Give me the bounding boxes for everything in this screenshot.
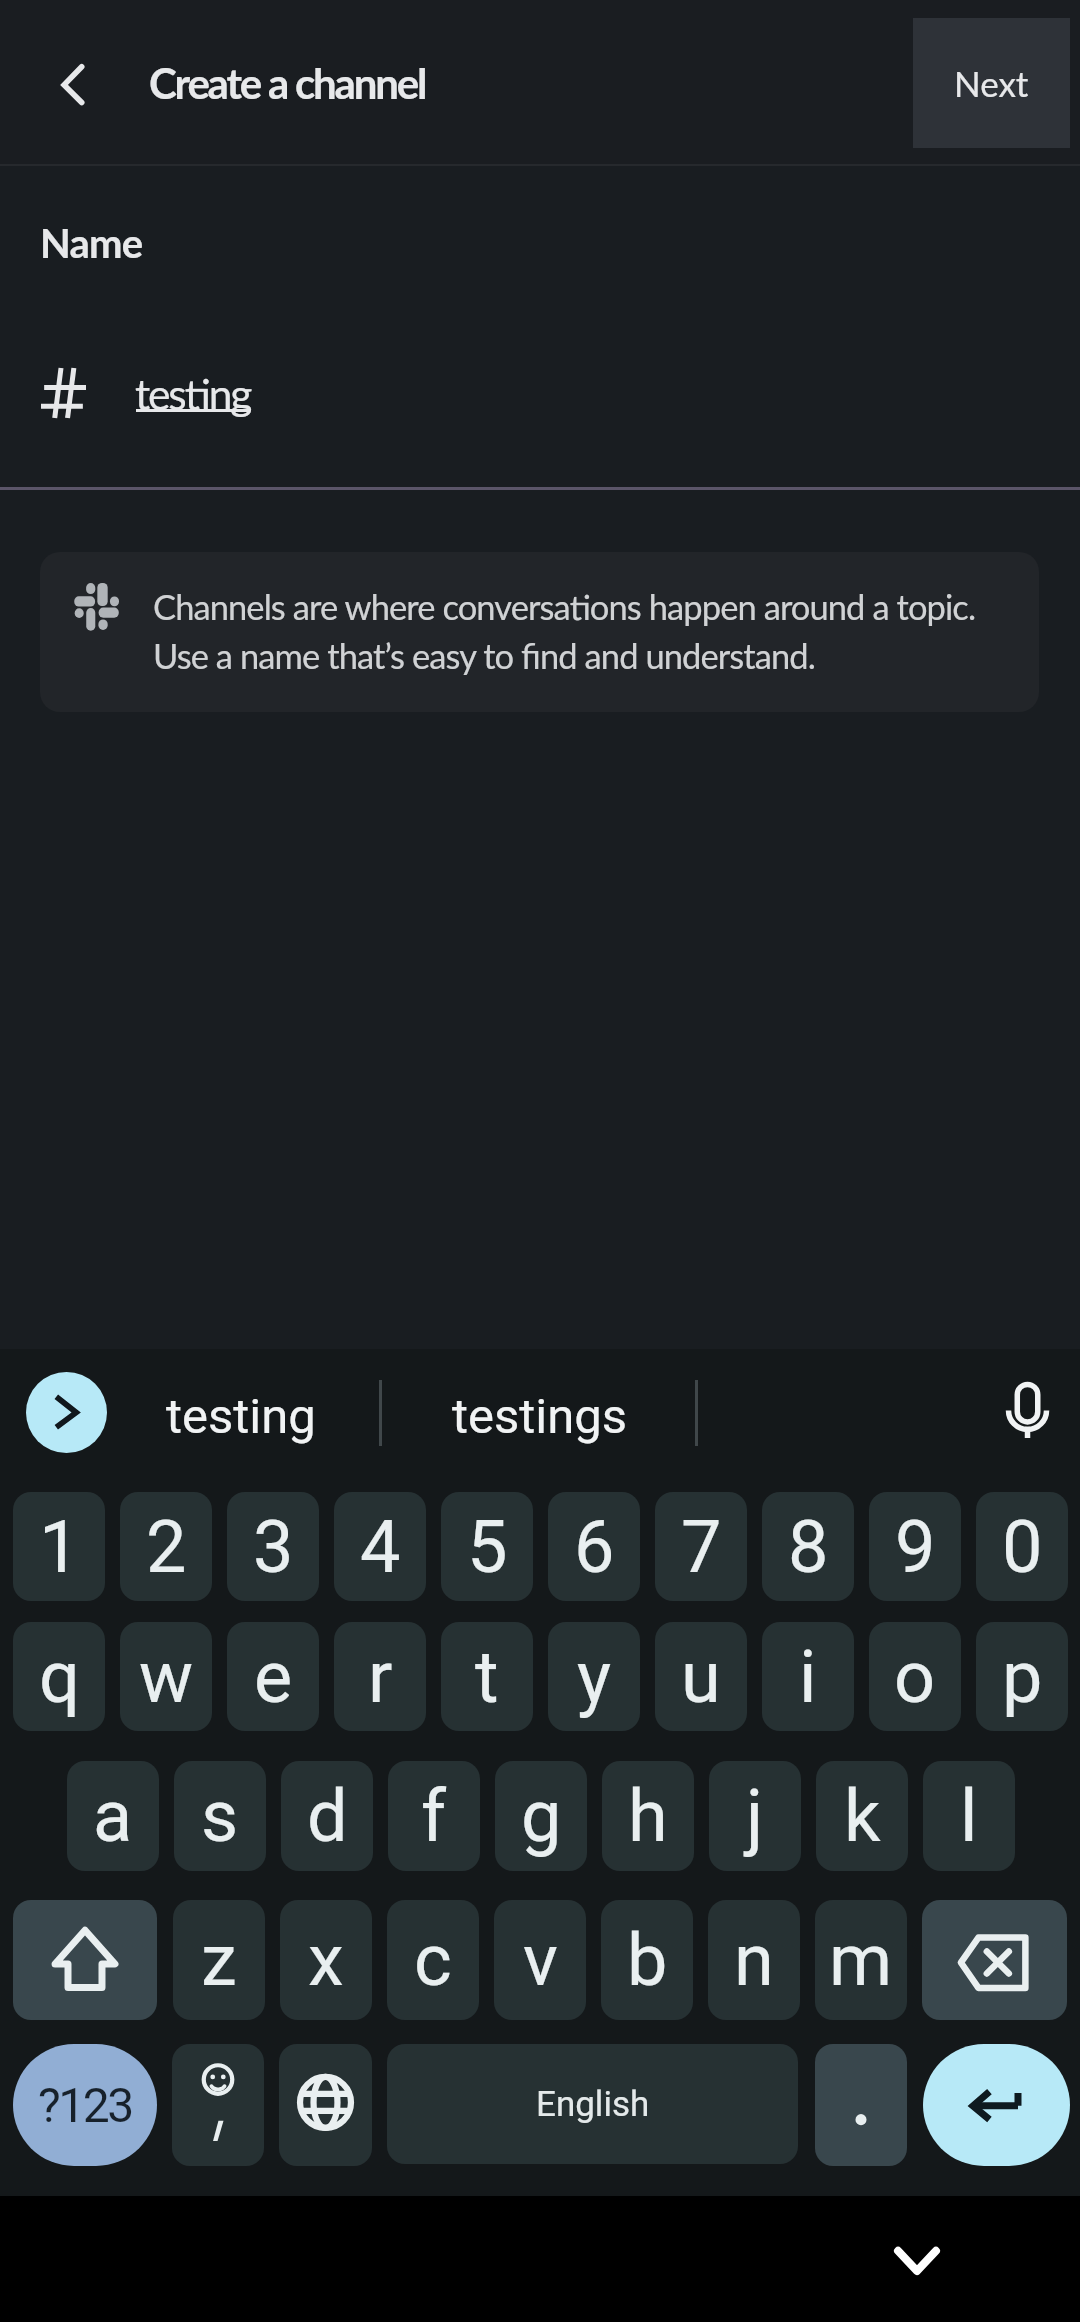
button[interactable]: j [709, 1761, 801, 1871]
button[interactable]: Enter [923, 2044, 1070, 2166]
staticText: Channels are where conversations happen … [153, 586, 976, 676]
button[interactable]: z [173, 1900, 265, 2020]
staticText: r [368, 1635, 393, 1719]
button[interactable]: s [174, 1761, 266, 1871]
staticText: x [308, 1918, 344, 2002]
staticText: i [799, 1635, 817, 1719]
button[interactable]: p [976, 1622, 1068, 1731]
button[interactable]: x [280, 1900, 372, 2020]
staticText: testing [135, 368, 251, 419]
staticText: d [307, 1774, 348, 1858]
staticText: Name [40, 219, 143, 267]
button[interactable]: Hide keyboard [869, 2215, 965, 2295]
button[interactable]: 0 [976, 1492, 1068, 1601]
staticText: 2 [146, 1505, 187, 1589]
button[interactable]: Period [815, 2044, 907, 2166]
staticText: s [201, 1774, 239, 1858]
button[interactable]: 1 [13, 1492, 105, 1601]
staticText: w [139, 1635, 194, 1719]
staticText: f [421, 1774, 447, 1858]
button[interactable]: 5 [441, 1492, 533, 1601]
button[interactable]: 9 [869, 1492, 961, 1601]
button[interactable]: c [387, 1900, 479, 2020]
staticText: 4 [360, 1505, 401, 1589]
button[interactable]: Back [32, 42, 116, 122]
staticText: t [475, 1635, 499, 1719]
staticText: 6 [574, 1505, 615, 1589]
staticText: z [201, 1918, 237, 2002]
button[interactable]: Next [913, 18, 1070, 148]
staticText: 1 [39, 1505, 80, 1589]
staticText: 5 [467, 1505, 508, 1589]
button[interactable]: i [762, 1622, 854, 1731]
staticText: l [960, 1774, 978, 1858]
staticText: testings [452, 1388, 628, 1445]
button[interactable]: 2 [120, 1492, 212, 1601]
button[interactable]: t [441, 1622, 533, 1731]
button[interactable]: a [67, 1761, 159, 1871]
button[interactable]: 6 [548, 1492, 640, 1601]
button[interactable]: l [923, 1761, 1015, 1871]
button[interactable]: ?123 [13, 2044, 157, 2166]
staticText: k [844, 1774, 881, 1858]
staticText: 0 [1002, 1505, 1043, 1589]
button[interactable]: m [815, 1900, 907, 2020]
staticText: a [93, 1774, 133, 1858]
staticText: testing [166, 1388, 316, 1445]
button[interactable]: g [495, 1761, 587, 1871]
button[interactable]: h [602, 1761, 694, 1871]
staticText: m [829, 1918, 893, 2002]
staticText: p [1002, 1635, 1043, 1719]
button[interactable]: r [334, 1622, 426, 1731]
button[interactable]: b [601, 1900, 693, 2020]
button[interactable]: 3 [227, 1492, 319, 1601]
button[interactable]: u [655, 1622, 747, 1731]
staticText: j [746, 1774, 764, 1858]
button[interactable]: 8 [762, 1492, 854, 1601]
staticText: 7 [681, 1505, 722, 1589]
button[interactable]: More suggestions [26, 1372, 107, 1453]
staticText: g [521, 1774, 562, 1858]
staticText: Next [954, 62, 1029, 104]
staticText: 3 [253, 1505, 294, 1589]
button[interactable]: Emoji [172, 2044, 264, 2166]
button[interactable]: k [816, 1761, 908, 1871]
button[interactable]: Backspace [922, 1900, 1067, 2020]
staticText: c [414, 1918, 452, 2002]
staticText: h [628, 1774, 668, 1858]
button[interactable]: testing [121, 1373, 361, 1459]
button[interactable]: Shift [13, 1900, 157, 2020]
staticText: b [627, 1918, 668, 2002]
button[interactable]: 7 [655, 1492, 747, 1601]
button[interactable]: v [494, 1900, 586, 2020]
button[interactable]: English [387, 2044, 798, 2164]
button[interactable]: q [13, 1622, 105, 1731]
staticText: Create a channel [149, 58, 426, 108]
button[interactable]: w [120, 1622, 212, 1731]
staticText: n [734, 1918, 774, 2002]
staticText: q [39, 1635, 80, 1719]
button[interactable]: e [227, 1622, 319, 1731]
button[interactable]: testings [406, 1373, 674, 1459]
staticText: ?123 [38, 2077, 132, 2133]
button[interactable]: 4 [334, 1492, 426, 1601]
button[interactable]: n [708, 1900, 800, 2020]
staticText: e [254, 1635, 293, 1719]
staticText: 9 [895, 1505, 936, 1589]
button[interactable]: Change language [279, 2044, 372, 2166]
staticText: o [894, 1635, 936, 1719]
staticText: y [577, 1635, 612, 1719]
button[interactable]: o [869, 1622, 961, 1731]
staticText: v [523, 1918, 558, 2002]
button[interactable]: y [548, 1622, 640, 1731]
staticText: English [536, 2084, 650, 2125]
button[interactable]: d [281, 1761, 373, 1871]
staticText: 8 [788, 1505, 829, 1589]
button[interactable]: Voice input [984, 1372, 1070, 1452]
button[interactable]: f [388, 1761, 480, 1871]
staticText: u [681, 1635, 721, 1719]
